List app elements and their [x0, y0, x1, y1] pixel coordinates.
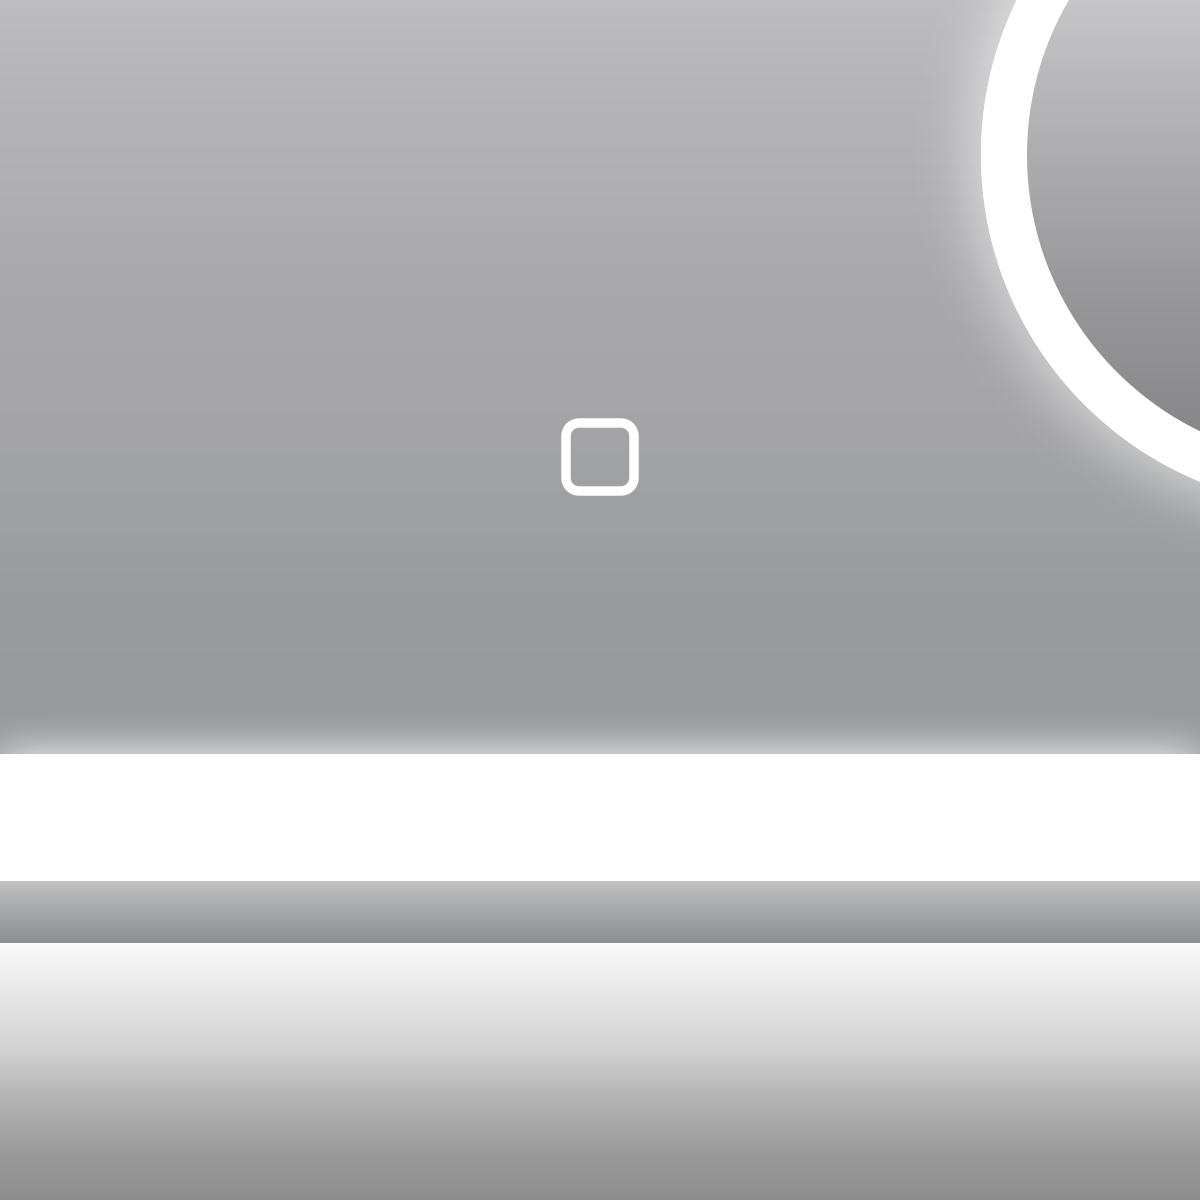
button[interactable]: Stop	[566, 423, 634, 491]
